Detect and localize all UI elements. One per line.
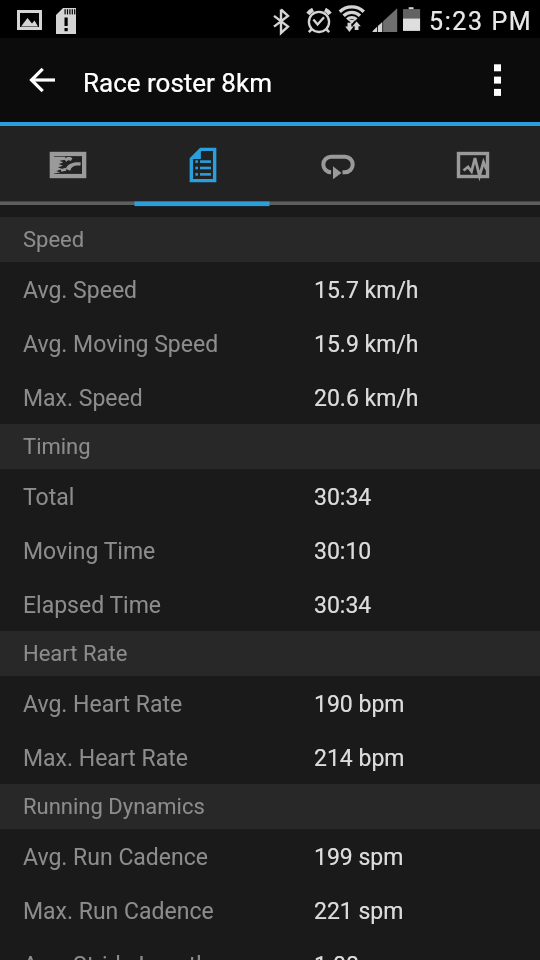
button[interactable]: Details bbox=[135, 126, 270, 205]
button[interactable]: Avg. Stride Length bbox=[0, 937, 540, 960]
button[interactable]: Max. Run Cadence bbox=[0, 883, 540, 937]
button[interactable]: Map bbox=[0, 126, 135, 205]
staticText: 5:23 PM bbox=[429, 7, 533, 36]
staticText: 20.6 km/h bbox=[314, 385, 419, 412]
staticText: Avg. Moving Speed bbox=[23, 331, 219, 358]
staticText: Moving Time bbox=[23, 538, 156, 565]
staticText: Timing bbox=[23, 434, 91, 460]
button[interactable]: Charts bbox=[405, 126, 540, 205]
staticText: Avg. Run Cadence bbox=[23, 844, 208, 871]
button[interactable]: Laps bbox=[270, 126, 405, 205]
button[interactable]: Avg. Heart Rate bbox=[0, 676, 540, 730]
staticText: 1.08 m bbox=[314, 952, 385, 960]
button[interactable]: Elapsed Time bbox=[0, 577, 540, 631]
staticText: Max. Speed bbox=[23, 385, 143, 412]
staticText: Avg. Heart Rate bbox=[23, 691, 183, 718]
staticText: Total bbox=[23, 484, 75, 511]
button[interactable]: Avg. Run Cadence bbox=[0, 829, 540, 883]
button[interactable]: Navigate up bbox=[14, 52, 70, 108]
button[interactable]: Avg. Moving Speed bbox=[0, 316, 540, 370]
button[interactable]: Max. Speed bbox=[0, 370, 540, 424]
staticText: 30:34 bbox=[314, 592, 372, 619]
staticText: 214 bpm bbox=[314, 745, 405, 772]
staticText: Speed bbox=[23, 227, 85, 253]
staticText: Elapsed Time bbox=[23, 592, 162, 619]
button[interactable]: Max. Heart Rate bbox=[0, 730, 540, 784]
staticText: Race roster 8km bbox=[83, 68, 272, 98]
staticText: Avg. Stride Length bbox=[23, 952, 209, 960]
staticText: Max. Heart Rate bbox=[23, 745, 188, 772]
staticText: 30:10 bbox=[314, 538, 372, 565]
staticText: 221 spm bbox=[314, 898, 404, 925]
button[interactable]: Moving Time bbox=[0, 523, 540, 577]
button[interactable]: Total bbox=[0, 469, 540, 523]
staticText: 190 bpm bbox=[314, 691, 405, 718]
button[interactable]: More options bbox=[484, 52, 540, 108]
staticText: Avg. Speed bbox=[23, 277, 138, 304]
staticText: 30:34 bbox=[314, 484, 372, 511]
staticText: 15.7 km/h bbox=[314, 277, 419, 304]
staticText: Max. Run Cadence bbox=[23, 898, 214, 925]
staticText: 199 spm bbox=[314, 844, 404, 871]
staticText: Heart Rate bbox=[23, 641, 128, 667]
button[interactable]: Avg. Speed bbox=[0, 262, 540, 316]
staticText: 15.9 km/h bbox=[314, 331, 419, 358]
staticText: Running Dynamics bbox=[23, 794, 205, 820]
